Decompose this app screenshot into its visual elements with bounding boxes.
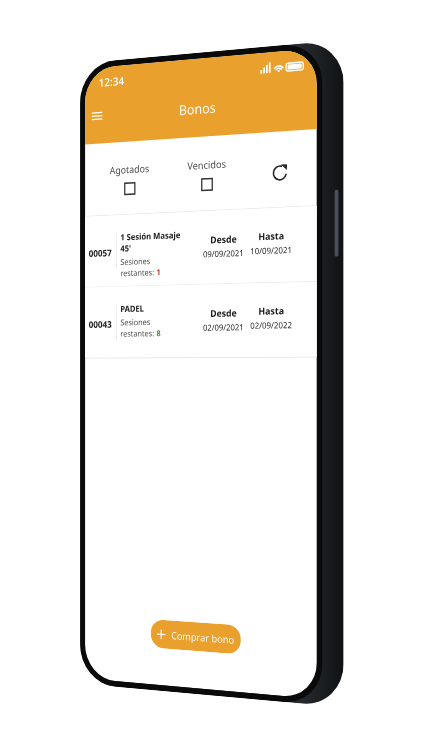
staticText: 02/09/2022 bbox=[250, 319, 293, 332]
staticText: Sesiones bbox=[120, 255, 151, 268]
button[interactable]: Comprar bono bbox=[151, 619, 241, 654]
staticText: 1 Sesión Masaje bbox=[120, 229, 181, 242]
staticText: Vencidos bbox=[187, 157, 226, 173]
staticText: Desde bbox=[210, 232, 237, 246]
staticText: 45' bbox=[120, 242, 131, 254]
staticText: 12:34 bbox=[99, 73, 125, 90]
button[interactable]: 00057 bbox=[85, 206, 317, 287]
staticText: 09/09/2021 bbox=[203, 247, 244, 260]
button[interactable]: 00043 bbox=[85, 282, 317, 358]
button[interactable]: Agotados bbox=[108, 161, 151, 196]
button[interactable]: Menu bbox=[86, 103, 107, 128]
staticText: 10/09/2021 bbox=[250, 244, 293, 257]
staticText: Sesiones bbox=[120, 316, 151, 328]
staticText: 02/09/2021 bbox=[203, 321, 244, 334]
staticText: Hasta bbox=[258, 304, 284, 318]
staticText: 00043 bbox=[89, 318, 112, 331]
staticText: restantes: bbox=[120, 267, 156, 279]
staticText: PADEL bbox=[120, 302, 144, 314]
staticText: Comprar bono bbox=[171, 628, 234, 647]
staticText: Hasta bbox=[258, 229, 284, 243]
staticText: restantes: bbox=[120, 328, 156, 339]
staticText: Bonos bbox=[179, 98, 216, 120]
staticText: 1 bbox=[156, 266, 161, 278]
staticText: 8 bbox=[156, 328, 161, 339]
staticText: Agotados bbox=[110, 161, 149, 177]
button[interactable]: Refresh bbox=[266, 157, 293, 188]
staticText: Desde bbox=[210, 306, 237, 320]
staticText: 00057 bbox=[89, 246, 112, 260]
button[interactable]: Vencidos bbox=[186, 157, 227, 192]
